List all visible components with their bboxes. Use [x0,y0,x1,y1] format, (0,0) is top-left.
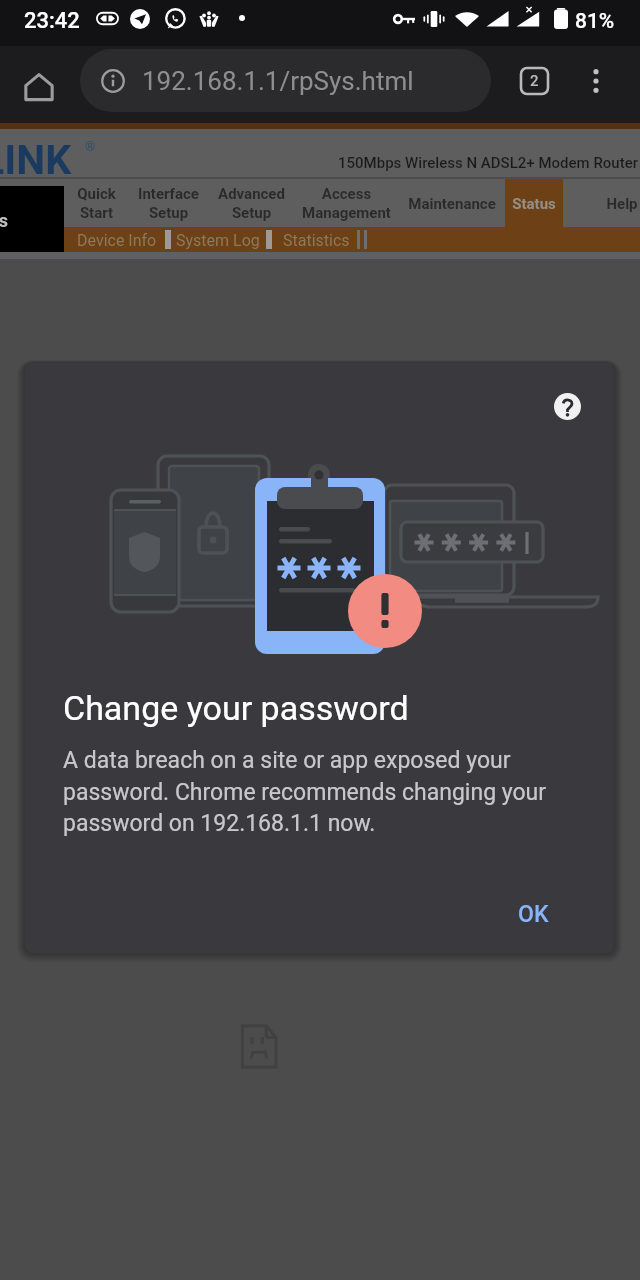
button[interactable]: Help [594,179,640,228]
staticText: Maintenance [408,195,496,213]
button[interactable]: More options [571,56,621,106]
staticText: Status [512,195,556,213]
button[interactable]: Maintenance [400,179,504,228]
staticText: 81% [575,9,615,34]
button[interactable]: Help [551,390,583,422]
staticText: Access Management [302,185,391,222]
staticText: Interface Setup [138,185,199,222]
staticText: 23:42 [24,8,80,34]
staticText: 2 [530,72,539,90]
button[interactable]: Tabs [509,56,559,106]
button[interactable]: Status [505,179,563,228]
button[interactable]: Quick Start [66,179,126,228]
staticText: 192.168.1.1/rpSys.html [142,66,414,96]
staticText: Statistics [283,231,350,250]
staticText: ls [0,210,9,231]
staticText: Advanced Setup [218,185,285,222]
button[interactable]: Home [14,62,64,112]
staticText: 150Mbps Wireless N ADSL2+ Modem Router [338,154,638,172]
staticText: Change your password [63,688,409,728]
button[interactable]: 192.168.1.1/rpSys.html [80,49,491,112]
other: Broken image [241,1025,277,1068]
button[interactable]: Interface Setup [126,179,210,228]
button[interactable]: Advanced Setup [210,179,292,228]
staticText: Device Info [77,231,157,250]
button[interactable]: OK [506,891,561,938]
staticText: LINK [0,136,72,184]
staticText: Help [606,195,638,213]
staticText: System Log [176,231,260,250]
button[interactable]: System Log [176,227,260,253]
staticText: A data breach on a site or app exposed y… [63,747,565,836]
button[interactable]: Device Info [74,227,160,253]
staticText: ® [85,139,96,154]
button[interactable]: Statistics [277,227,355,253]
staticText: OK [518,901,549,928]
staticText: Quick Start [77,185,116,222]
button[interactable]: Access Management [292,179,400,228]
